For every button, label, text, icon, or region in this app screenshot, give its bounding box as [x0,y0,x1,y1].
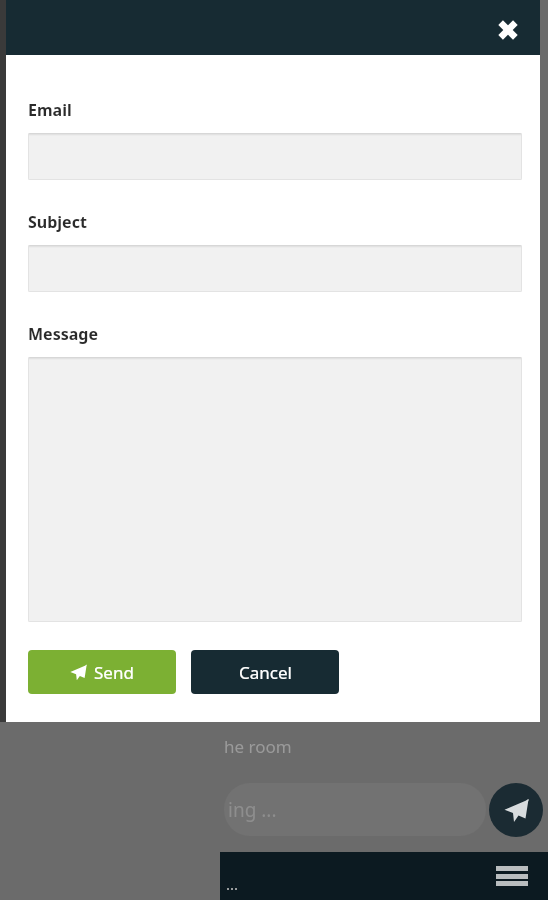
button[interactable] [28,133,522,180]
button[interactable]: Close [488,10,528,50]
button[interactable] [28,245,522,292]
button[interactable]: Send message [489,783,543,837]
staticText: he room [224,735,292,758]
button[interactable]: Send [28,650,176,694]
staticText: Subject [28,211,87,233]
button[interactable]: Menu [496,863,528,889]
staticText: Send [94,661,134,684]
staticText: Email [28,99,72,121]
staticText: Message [28,323,98,345]
staticText: Cancel [239,661,292,684]
staticText: ing ... [228,797,277,823]
staticText: ... [226,874,239,894]
button[interactable]: Cancel [191,650,339,694]
